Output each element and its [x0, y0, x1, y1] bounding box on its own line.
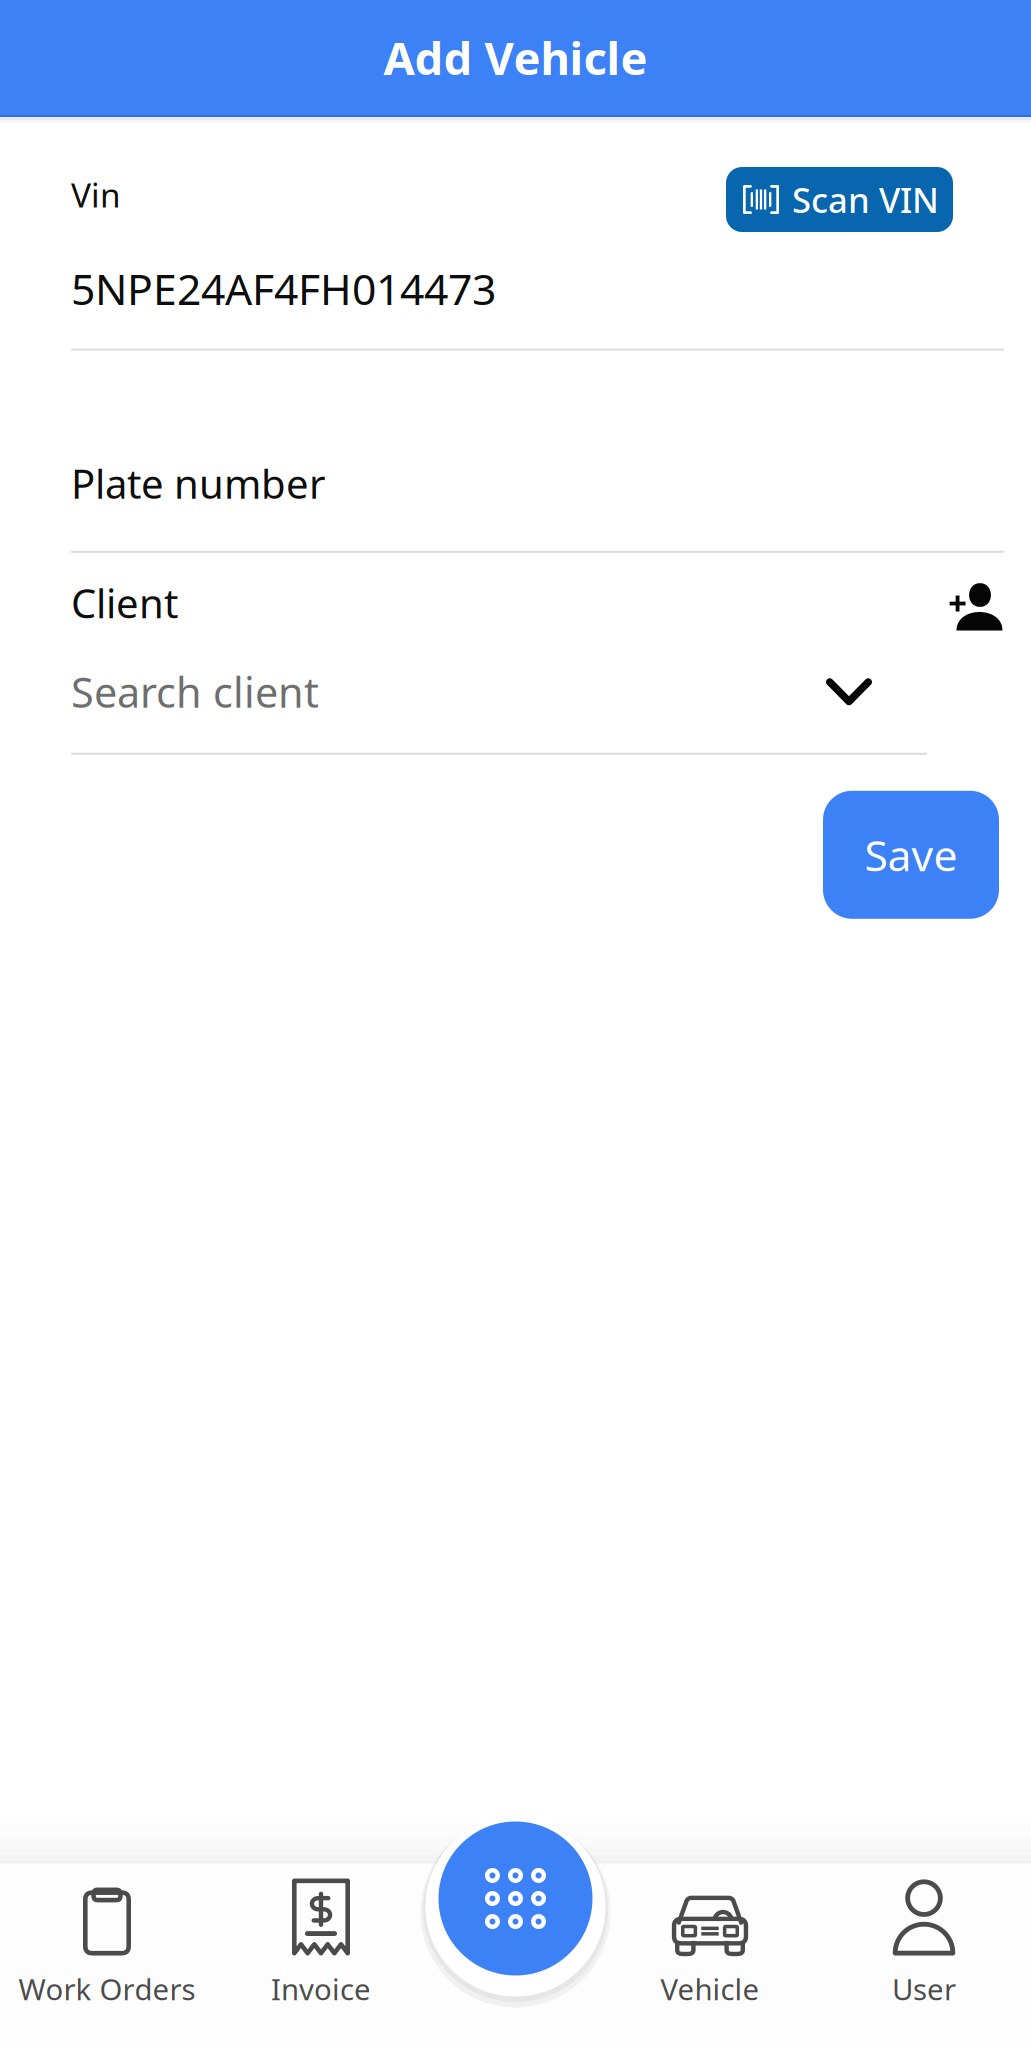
staticText: Vin — [71, 172, 121, 217]
staticText: Search client — [71, 664, 319, 719]
button[interactable]: Invoice — [214, 1850, 428, 2048]
button[interactable]: Work Orders — [0, 1850, 214, 2048]
staticText: Client — [71, 576, 178, 629]
button[interactable]: Scan VIN — [726, 167, 953, 232]
staticText: Add Vehicle — [383, 27, 647, 88]
staticText: User — [892, 1969, 956, 2008]
staticText: Invoice — [271, 1969, 371, 2008]
button[interactable]: Choose client — [814, 666, 884, 717]
staticText: Work Orders — [18, 1969, 195, 2008]
button[interactable]: User — [817, 1850, 1031, 2048]
button[interactable]: Add client — [939, 568, 1012, 638]
staticText: Vehicle — [660, 1969, 759, 2008]
staticText: Plate number — [71, 457, 326, 510]
staticText: 5NPE24AF4FH014473 — [71, 260, 496, 317]
staticText: Save — [864, 826, 957, 883]
button[interactable]: Vehicle — [603, 1850, 817, 2048]
button[interactable]: Save — [823, 791, 999, 919]
button[interactable]: Apps — [422, 1805, 608, 1991]
staticText: Scan VIN — [792, 176, 939, 222]
